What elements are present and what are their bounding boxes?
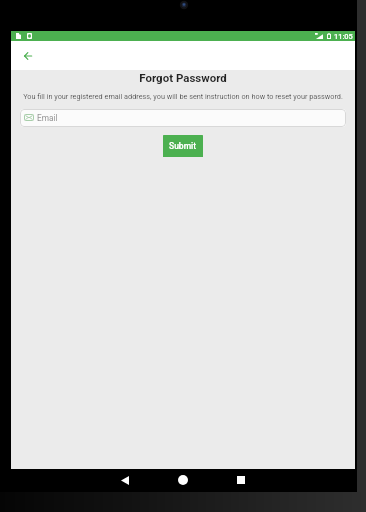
button[interactable]: Submit (163, 135, 203, 157)
button[interactable]: Email (20, 109, 346, 127)
button[interactable]: Home (161, 469, 205, 491)
button[interactable]: Back (103, 469, 147, 491)
button[interactable]: Navigate back (16, 44, 39, 67)
staticText: Email (37, 113, 58, 123)
staticText: Submit (169, 141, 197, 151)
staticText: 11:05 (334, 32, 353, 41)
staticText: Forgot Password (11, 71, 355, 84)
button[interactable]: Recent apps (219, 469, 263, 491)
staticText: You fill in your registered email addres… (13, 92, 353, 101)
